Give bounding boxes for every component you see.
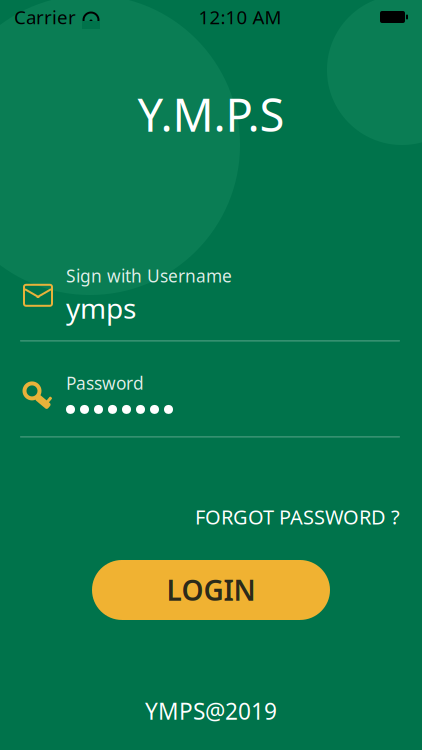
staticText: ymps — [66, 289, 136, 326]
staticText: FORGOT PASSWORD ? — [195, 503, 400, 530]
staticText: Y.M.P.S — [137, 84, 284, 144]
staticText: Carrier — [14, 5, 76, 29]
button[interactable]: LOGIN — [92, 560, 330, 620]
staticText: Password — [66, 371, 144, 394]
staticText: YMPS@2019 — [145, 696, 277, 726]
staticText: Sign with Username — [66, 264, 232, 287]
button[interactable]: FORGOT PASSWORD ? — [191, 499, 404, 534]
staticText: LOGIN — [166, 571, 255, 609]
staticText: 12:10 AM — [198, 5, 281, 29]
